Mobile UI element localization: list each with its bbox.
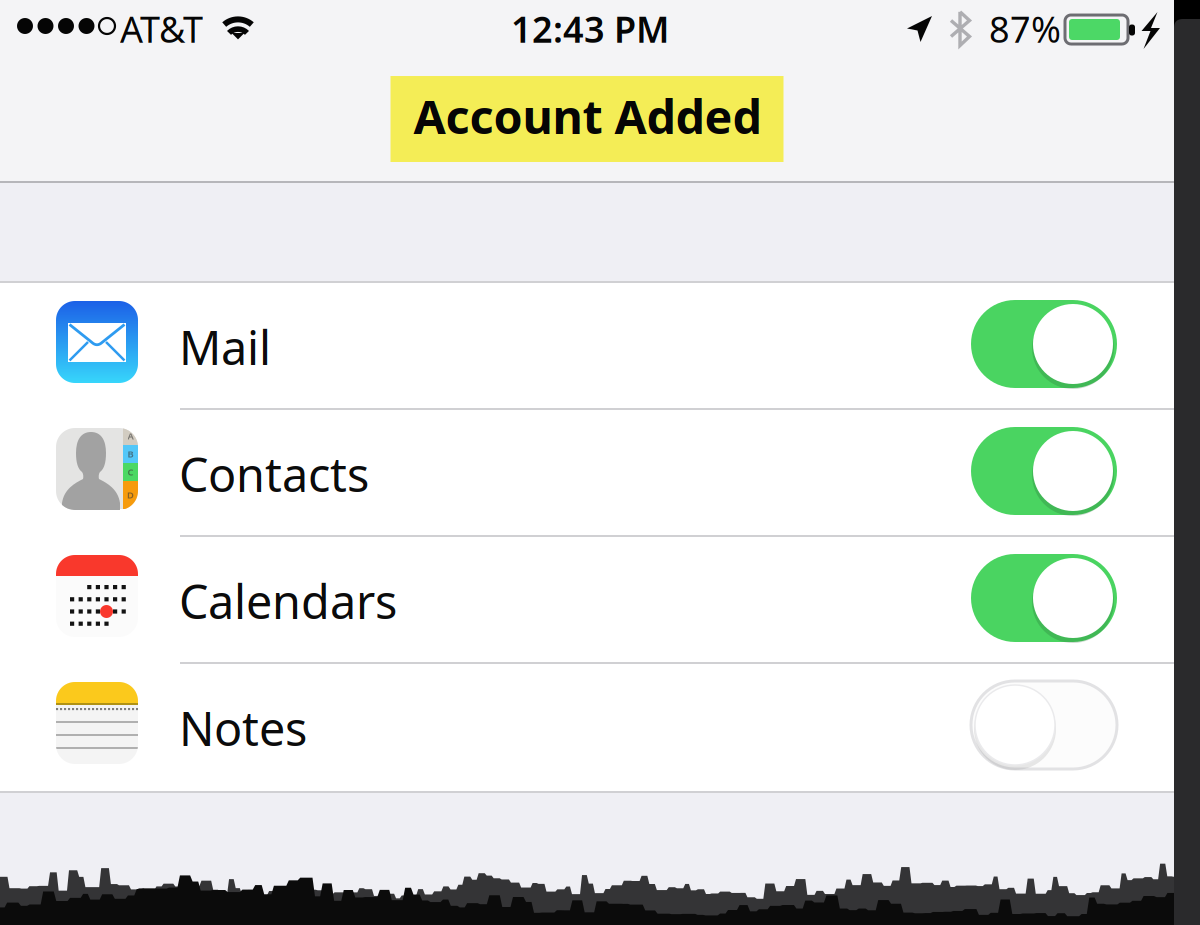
staticText: Contacts [179, 443, 369, 505]
button[interactable]: Mail, on [971, 300, 1117, 388]
staticText: Account Added [413, 85, 761, 147]
button[interactable]: Notes [0, 664, 1174, 791]
staticText: Calendars [179, 570, 397, 632]
button[interactable]: Contacts, on [971, 427, 1117, 515]
staticText: Mail [179, 316, 271, 378]
staticText: D [127, 489, 134, 501]
button[interactable]: Mail [0, 283, 1174, 410]
staticText: 87% [989, 5, 1061, 53]
button[interactable]: A [0, 410, 1174, 537]
staticText: AT&T [120, 5, 203, 53]
staticText: A [127, 430, 133, 442]
button[interactable]: Notes, off [971, 681, 1117, 769]
staticText: B [127, 448, 133, 460]
button[interactable]: Calendars [0, 537, 1174, 664]
staticText: C [127, 466, 133, 478]
staticText: 12:43 PM [511, 5, 669, 53]
staticText: Notes [179, 697, 307, 759]
button[interactable]: Calendars, on [971, 554, 1117, 642]
